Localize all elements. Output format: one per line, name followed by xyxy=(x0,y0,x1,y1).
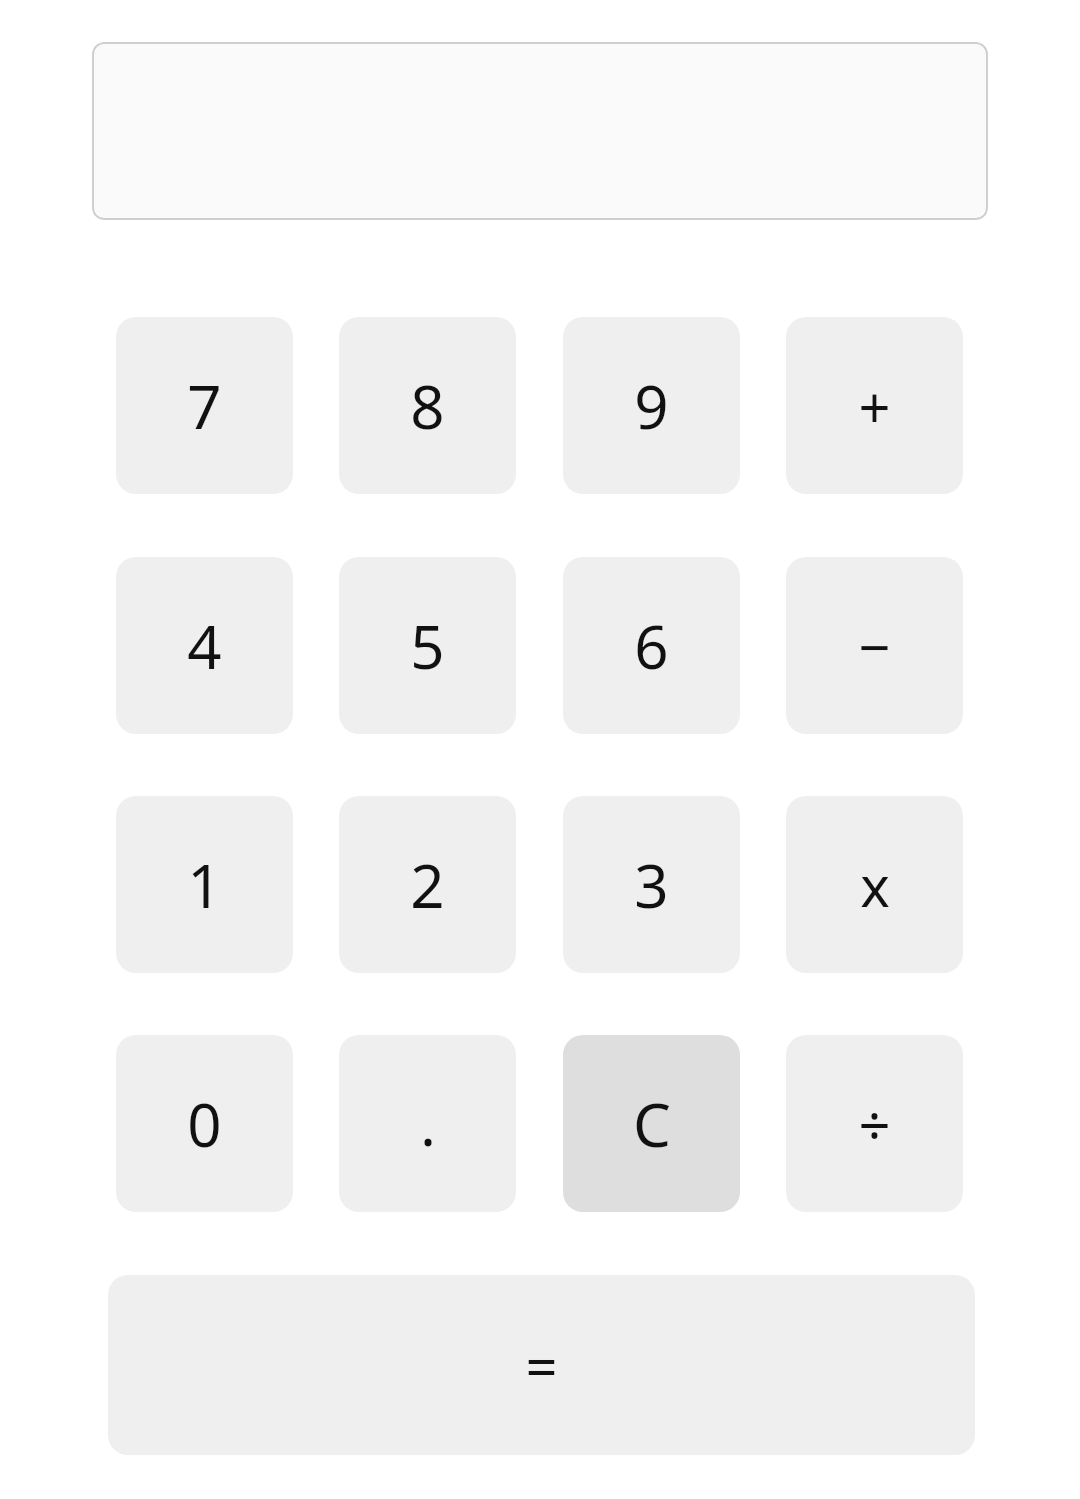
staticText: + xyxy=(858,368,891,444)
staticText: C xyxy=(633,1083,671,1165)
staticText: 2 xyxy=(410,844,445,926)
button[interactable]: 1 xyxy=(116,796,293,973)
staticText: 1 xyxy=(187,844,222,926)
staticText: 7 xyxy=(187,365,222,447)
button[interactable]: 2 xyxy=(339,796,516,973)
button[interactable]: 3 xyxy=(563,796,740,973)
button[interactable] xyxy=(92,42,988,220)
button[interactable]: ÷ xyxy=(786,1035,963,1212)
button[interactable]: 9 xyxy=(563,317,740,494)
button[interactable]: − xyxy=(786,557,963,734)
staticText: 9 xyxy=(634,365,669,447)
button[interactable]: 6 xyxy=(563,557,740,734)
staticText: x xyxy=(860,847,890,923)
button[interactable]: 8 xyxy=(339,317,516,494)
button[interactable]: 5 xyxy=(339,557,516,734)
staticText: 6 xyxy=(634,605,669,687)
button[interactable]: x xyxy=(786,796,963,973)
button[interactable]: + xyxy=(786,317,963,494)
staticText: − xyxy=(858,608,891,684)
staticText: 3 xyxy=(634,844,669,926)
button[interactable]: . xyxy=(339,1035,516,1212)
button[interactable]: = xyxy=(108,1275,975,1455)
staticText: 8 xyxy=(410,365,445,447)
staticText: 0 xyxy=(187,1083,222,1165)
staticText: = xyxy=(525,1327,558,1403)
staticText: 5 xyxy=(410,605,445,687)
staticText: . xyxy=(420,1084,436,1163)
button[interactable]: C xyxy=(563,1035,740,1212)
button[interactable]: 7 xyxy=(116,317,293,494)
staticText: 4 xyxy=(187,605,222,687)
staticText: ÷ xyxy=(858,1086,891,1162)
button[interactable]: 4 xyxy=(116,557,293,734)
button[interactable]: 0 xyxy=(116,1035,293,1212)
